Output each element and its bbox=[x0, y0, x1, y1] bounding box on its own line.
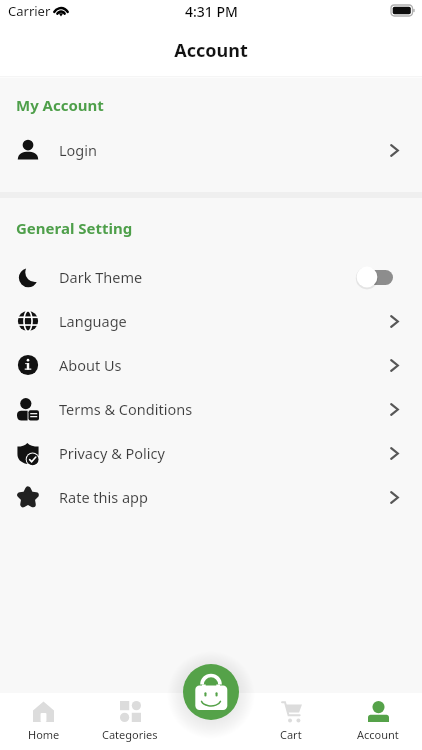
staticText: Dark Theme bbox=[59, 267, 143, 287]
button[interactable]: Login bbox=[0, 128, 422, 172]
staticText: Rate this app bbox=[59, 487, 148, 507]
button[interactable]: Terms & Conditions bbox=[0, 387, 422, 431]
other: Open Rate this app bbox=[390, 491, 399, 504]
button[interactable]: Account bbox=[334, 693, 422, 750]
staticText: Cart bbox=[280, 727, 302, 742]
staticText: Categories bbox=[102, 727, 158, 742]
other: Open Privacy & Policy bbox=[390, 447, 399, 460]
staticText: Account bbox=[357, 727, 399, 742]
button[interactable]: Rate this app bbox=[0, 475, 422, 519]
staticText: My Account bbox=[16, 95, 104, 115]
button[interactable]: Dark Theme bbox=[0, 255, 422, 299]
staticText: 4:31 PM bbox=[185, 2, 238, 21]
button[interactable]: Shop bbox=[183, 664, 239, 720]
staticText: Terms & Conditions bbox=[59, 399, 193, 419]
staticText: Home bbox=[28, 727, 60, 742]
button[interactable]: About Us bbox=[0, 343, 422, 387]
other: Open Terms & Conditions bbox=[390, 403, 399, 416]
staticText: Language bbox=[59, 311, 127, 331]
staticText: General Setting bbox=[16, 218, 133, 238]
other: Open Language bbox=[390, 315, 399, 328]
other: Open Login bbox=[390, 144, 399, 157]
button[interactable]: Dark theme toggle bbox=[355, 265, 393, 289]
staticText: Carrier bbox=[8, 2, 51, 20]
button[interactable]: Cart bbox=[255, 693, 327, 750]
staticText: Login bbox=[59, 140, 97, 160]
staticText: Account bbox=[174, 38, 248, 63]
staticText: Privacy & Policy bbox=[59, 443, 165, 463]
button[interactable]: Home bbox=[1, 693, 86, 750]
button[interactable]: Language bbox=[0, 299, 422, 343]
button[interactable]: Privacy & Policy bbox=[0, 431, 422, 475]
other: Open About Us bbox=[390, 359, 399, 372]
staticText: About Us bbox=[59, 355, 122, 375]
button[interactable]: Categories bbox=[86, 693, 174, 750]
